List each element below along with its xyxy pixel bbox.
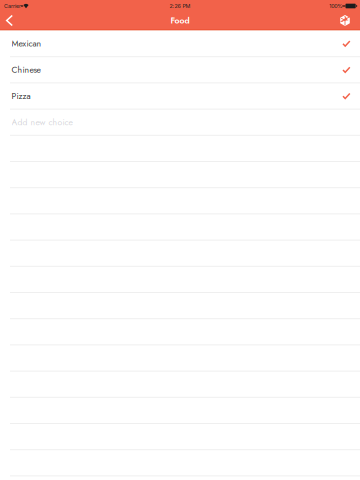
staticText: 2:26 PM	[169, 3, 190, 9]
button[interactable]: Pizza	[0, 83, 360, 110]
button[interactable]: Chinese	[0, 57, 360, 83]
button[interactable]: Pick a random choice	[331, 11, 360, 29]
staticText: 100%	[329, 3, 342, 9]
staticText: Add new choice	[11, 116, 72, 128]
staticText: Pizza	[11, 90, 30, 102]
button[interactable]: Add new choice	[0, 110, 360, 136]
staticText: Mexican	[11, 37, 41, 50]
button[interactable]: Mexican	[0, 31, 360, 57]
button[interactable]: Back	[0, 11, 21, 29]
staticText: Food	[170, 14, 189, 27]
staticText: Carrier	[4, 3, 21, 9]
staticText: Chinese	[11, 63, 40, 76]
